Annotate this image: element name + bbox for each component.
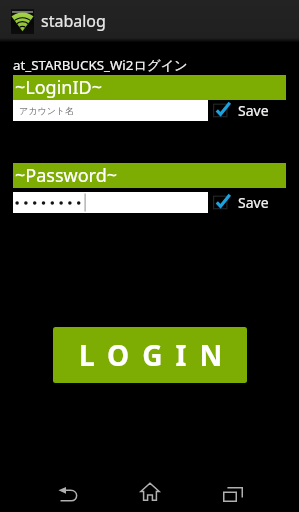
staticText: アカウント名 [19,105,75,116]
button[interactable]: ~LoginID~ [13,75,286,100]
button[interactable]: Recent apps [209,478,257,511]
button[interactable]: LOGIN [53,327,247,383]
staticText: ~LoginID~ [15,75,102,100]
button[interactable]: ~Password~ [13,163,286,188]
button[interactable]: アカウント名 [13,100,208,121]
staticText: stabalog [41,10,106,32]
staticText: ~Password~ [15,163,118,188]
button[interactable]: Back [44,478,92,511]
button[interactable] [13,192,208,213]
staticText: Save [238,193,269,212]
button[interactable]: Save [213,101,269,120]
staticText: at_STARBUCKS_Wi2ログイン [13,56,188,74]
button[interactable]: Save [213,193,269,212]
staticText: Save [238,101,269,120]
button[interactable]: Home [126,473,174,510]
staticText: LOGIN [79,336,236,374]
